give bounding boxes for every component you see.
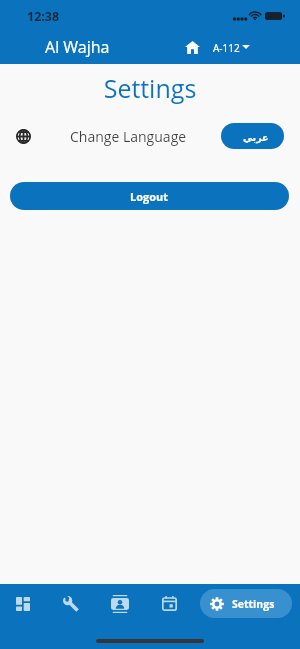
button[interactable]: Contacts xyxy=(105,589,135,619)
button[interactable]: Calendar xyxy=(154,588,184,618)
staticText: Settings xyxy=(232,597,275,611)
button[interactable]: Unit A-112 xyxy=(208,36,254,58)
button[interactable]: Home xyxy=(181,36,203,58)
staticText: A-112 xyxy=(213,41,240,55)
staticText: Change Language xyxy=(70,127,187,146)
button[interactable]: Dashboard xyxy=(8,589,38,619)
button[interactable]: عربي xyxy=(221,123,284,149)
button[interactable]: Settings xyxy=(200,589,292,618)
button[interactable]: Change Language xyxy=(0,114,300,158)
button[interactable]: Logout xyxy=(10,182,289,210)
staticText: 12:38 xyxy=(27,8,60,25)
staticText: Logout xyxy=(130,189,169,204)
staticText: Settings xyxy=(0,71,300,105)
staticText: عربي xyxy=(243,132,269,143)
staticText: Al Wajha xyxy=(45,36,110,58)
button[interactable]: Tools xyxy=(56,589,86,619)
